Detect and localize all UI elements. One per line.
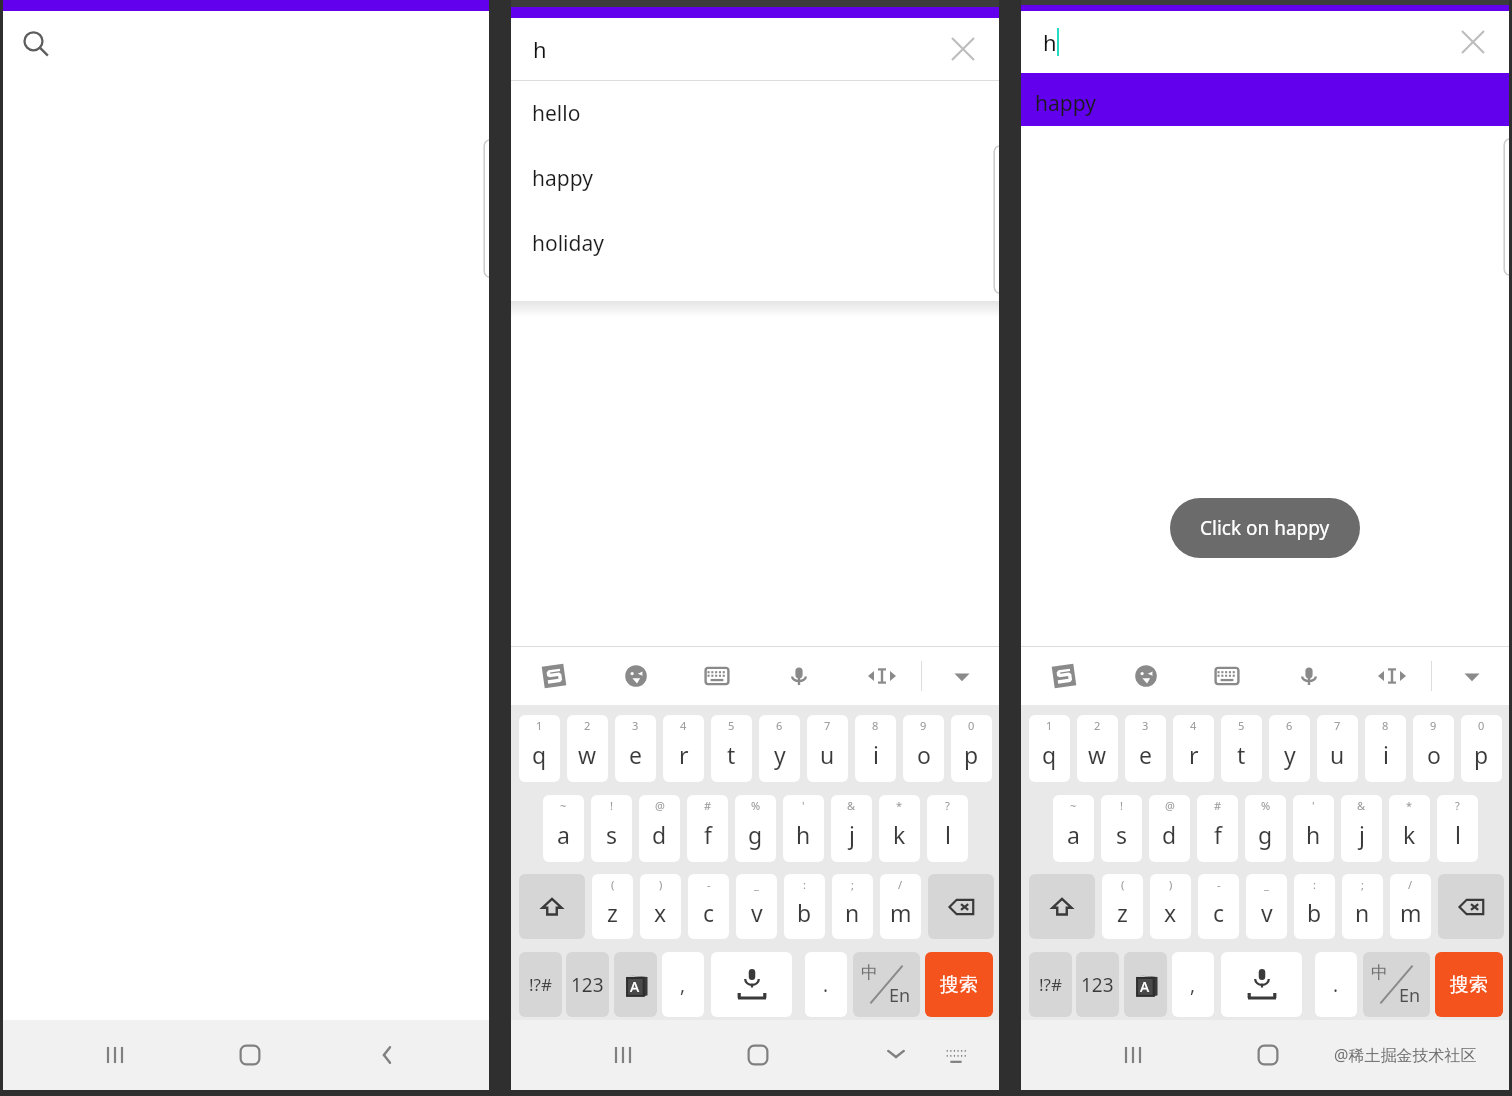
button[interactable]: & (831, 795, 872, 862)
button[interactable]: holiday (511, 211, 999, 276)
button[interactable]: Sogou input (1039, 647, 1089, 705)
button[interactable]: happy (1021, 73, 1509, 126)
button[interactable]: Collapse (1447, 647, 1497, 705)
button[interactable]: h (511, 18, 999, 80)
button[interactable]: Space (1221, 952, 1302, 1017)
button[interactable]: : (1294, 874, 1335, 939)
button[interactable]: 9 (903, 715, 944, 782)
button[interactable]: 0 (1461, 715, 1502, 782)
button[interactable]: 7 (807, 715, 848, 782)
button[interactable]: Recents (1107, 1020, 1159, 1090)
button[interactable]: ( (592, 874, 633, 939)
button[interactable]: Sogou input (529, 647, 579, 705)
button[interactable]: Period (1315, 952, 1357, 1017)
button[interactable]: Home (224, 1020, 276, 1090)
button[interactable]: 8 (855, 715, 896, 782)
button[interactable]: 5 (1221, 715, 1262, 782)
button[interactable]: Backspace (1438, 874, 1504, 939)
button[interactable]: ' (1293, 795, 1334, 862)
button[interactable]: Recents (597, 1020, 649, 1090)
button[interactable]: - (1198, 874, 1239, 939)
button[interactable]: Period (805, 952, 847, 1017)
button[interactable]: Home (1242, 1020, 1294, 1090)
button[interactable]: happy (511, 146, 999, 211)
button[interactable]: Keyboard settings (1202, 647, 1252, 705)
button[interactable]: 2 (567, 715, 608, 782)
button[interactable]: Clear search (1453, 22, 1493, 62)
button[interactable]: & (1341, 795, 1382, 862)
button[interactable]: Space (711, 952, 792, 1017)
button[interactable]: Move cursor (1367, 647, 1417, 705)
button[interactable]: ; (1342, 874, 1383, 939)
button[interactable]: Comma (1172, 952, 1214, 1017)
button[interactable]: 7 (1317, 715, 1358, 782)
button[interactable]: Collapse (937, 647, 987, 705)
button[interactable]: ; (832, 874, 873, 939)
button[interactable]: Chinese English toggle (853, 952, 920, 1017)
button[interactable]: Numbers (1076, 952, 1119, 1017)
button[interactable]: - (688, 874, 729, 939)
button[interactable]: Language (1124, 952, 1167, 1017)
button[interactable]: hello (511, 81, 999, 146)
button[interactable]: 4 (663, 715, 704, 782)
button[interactable]: Search (1435, 952, 1503, 1017)
button[interactable]: ~ (543, 795, 584, 862)
button[interactable]: 9 (1413, 715, 1454, 782)
button[interactable]: 5 (711, 715, 752, 782)
button[interactable]: Shift (519, 874, 585, 939)
button[interactable]: ' (783, 795, 824, 862)
button[interactable]: Backspace (928, 874, 994, 939)
button[interactable]: ) (640, 874, 681, 939)
button[interactable]: Clear search (943, 29, 983, 69)
button[interactable]: % (735, 795, 776, 862)
button[interactable]: 1 (519, 715, 560, 782)
button[interactable]: : (784, 874, 825, 939)
button[interactable]: Symbols (1029, 952, 1072, 1017)
button[interactable]: 3 (615, 715, 656, 782)
button[interactable]: Voice input (1284, 647, 1334, 705)
button[interactable]: Comma (662, 952, 704, 1017)
button[interactable]: _ (736, 874, 777, 939)
button[interactable]: 6 (759, 715, 800, 782)
button[interactable]: Voice input (774, 647, 824, 705)
button[interactable]: @ (1149, 795, 1190, 862)
button[interactable]: Language (614, 952, 657, 1017)
button[interactable]: ? (1437, 795, 1478, 862)
button[interactable]: 3 (1125, 715, 1166, 782)
button[interactable]: Search (925, 952, 993, 1017)
button[interactable]: ~ (1053, 795, 1094, 862)
button[interactable]: Recents (89, 1020, 141, 1090)
button[interactable]: 2 (1077, 715, 1118, 782)
button[interactable]: ! (1101, 795, 1142, 862)
button[interactable]: h (1021, 11, 1509, 73)
button[interactable]: Back (362, 1020, 414, 1090)
button[interactable]: @ (639, 795, 680, 862)
button[interactable]: / (880, 874, 921, 939)
button[interactable]: ? (927, 795, 968, 862)
button[interactable]: Search (14, 22, 58, 66)
button[interactable]: Symbols (519, 952, 562, 1017)
button[interactable]: Hide keyboard (870, 1020, 922, 1090)
button[interactable]: # (687, 795, 728, 862)
button[interactable]: Emoji (611, 647, 661, 705)
button[interactable]: * (1389, 795, 1430, 862)
button[interactable]: 1 (1029, 715, 1070, 782)
button[interactable]: * (879, 795, 920, 862)
button[interactable]: ! (591, 795, 632, 862)
button[interactable]: 0 (951, 715, 992, 782)
button[interactable]: Keyboard switch (930, 1020, 982, 1090)
button[interactable]: / (1390, 874, 1431, 939)
button[interactable]: 4 (1173, 715, 1214, 782)
button[interactable]: Emoji (1121, 647, 1171, 705)
button[interactable]: Numbers (566, 952, 609, 1017)
button[interactable]: _ (1246, 874, 1287, 939)
button[interactable]: Shift (1029, 874, 1095, 939)
button[interactable]: Move cursor (857, 647, 907, 705)
button[interactable]: ) (1150, 874, 1191, 939)
button[interactable]: Home (732, 1020, 784, 1090)
button[interactable]: # (1197, 795, 1238, 862)
button[interactable]: ( (1102, 874, 1143, 939)
button[interactable]: Chinese English toggle (1363, 952, 1430, 1017)
button[interactable]: % (1245, 795, 1286, 862)
button[interactable]: 6 (1269, 715, 1310, 782)
